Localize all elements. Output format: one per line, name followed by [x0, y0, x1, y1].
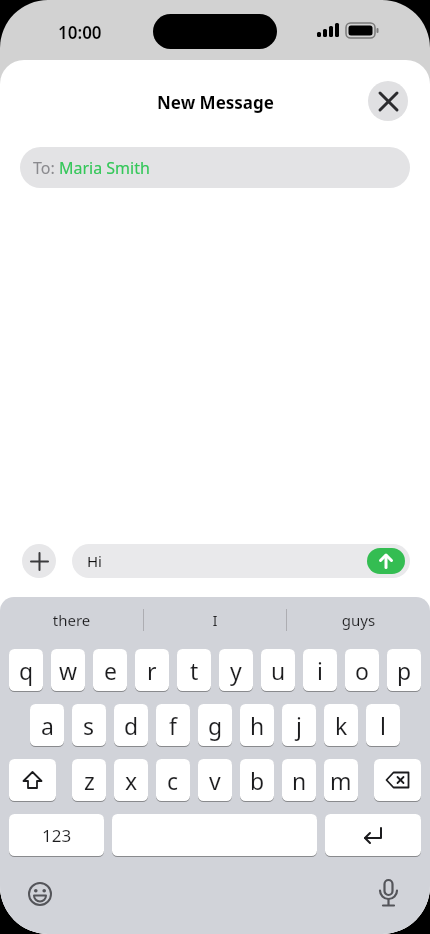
button[interactable] [22, 544, 56, 578]
button[interactable]: d [114, 704, 148, 746]
button[interactable]: s [72, 704, 106, 746]
staticText: s [83, 710, 95, 741]
button[interactable]: y [219, 649, 253, 691]
button[interactable]: c [156, 759, 190, 801]
button[interactable]: z [72, 759, 106, 801]
staticText: q [19, 655, 34, 686]
button[interactable]: x [114, 759, 148, 801]
button[interactable] [325, 814, 421, 856]
button[interactable]: i [303, 649, 337, 691]
button[interactable]: f [156, 704, 190, 746]
button[interactable]: m [324, 759, 358, 801]
staticText: j [296, 710, 302, 741]
button[interactable]: k [324, 704, 358, 746]
button[interactable] [112, 814, 317, 856]
button[interactable]: 123 [9, 814, 104, 856]
button[interactable] [9, 759, 56, 801]
staticText: e [104, 655, 117, 686]
staticText: y [230, 655, 242, 686]
button[interactable]: a [30, 704, 64, 746]
staticText: guys [287, 610, 430, 630]
staticText: z [84, 765, 95, 796]
staticText: a [41, 710, 54, 741]
button[interactable]: l [366, 704, 400, 746]
staticText: r [147, 655, 157, 686]
button[interactable]: v [198, 759, 232, 801]
button[interactable]: q [9, 649, 43, 691]
button[interactable] [368, 81, 408, 121]
staticText: 123 [42, 824, 72, 847]
staticText: f [169, 710, 177, 741]
button[interactable] [367, 548, 405, 574]
staticText: l [380, 710, 386, 741]
staticText: w [59, 655, 78, 686]
staticText: New Message [157, 91, 274, 114]
staticText: c [167, 765, 179, 796]
staticText: t [190, 655, 199, 686]
button[interactable]: b [240, 759, 274, 801]
button[interactable]: Hi [72, 544, 410, 578]
button[interactable]: t [177, 649, 211, 691]
button[interactable] [374, 759, 421, 801]
button[interactable]: h [240, 704, 274, 746]
button[interactable]: p [387, 649, 421, 691]
staticText: i [317, 655, 323, 686]
staticText: u [271, 655, 286, 686]
staticText: To: Maria Smith [33, 157, 150, 179]
staticText: n [292, 765, 307, 796]
button[interactable]: r [135, 649, 169, 691]
staticText: g [208, 710, 223, 741]
button[interactable]: o [345, 649, 379, 691]
staticText: Hi [87, 551, 102, 571]
button[interactable]: e [93, 649, 127, 691]
staticText: x [125, 765, 138, 796]
staticText: 10:00 [58, 21, 102, 44]
staticText: h [250, 710, 265, 741]
staticText: d [124, 710, 139, 741]
staticText: v [209, 765, 221, 796]
button[interactable]: j [282, 704, 316, 746]
button[interactable]: g [198, 704, 232, 746]
staticText: there [0, 610, 143, 630]
staticText: k [335, 710, 348, 741]
button[interactable]: u [261, 649, 295, 691]
staticText: b [250, 765, 265, 796]
button[interactable]: To: Maria Smith [20, 147, 410, 188]
staticText: p [397, 655, 412, 686]
button[interactable]: n [282, 759, 316, 801]
button[interactable]: w [51, 649, 85, 691]
staticText: I [143, 610, 287, 630]
staticText: o [355, 655, 369, 686]
staticText: m [330, 765, 352, 796]
